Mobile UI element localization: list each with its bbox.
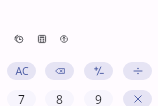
- button[interactable]: 8: [45, 90, 74, 106]
- button[interactable]: Multiply: [123, 90, 152, 106]
- button[interactable]: Calculator: [33, 30, 51, 48]
- button[interactable]: History: [10, 30, 28, 48]
- button[interactable]: AC: [7, 62, 36, 80]
- button[interactable]: Divide: [123, 62, 152, 80]
- button[interactable]: 7: [7, 90, 36, 106]
- staticText: 8: [56, 91, 63, 106]
- button[interactable]: Unit converter: [55, 30, 73, 48]
- button[interactable]: Plus minus: [84, 62, 113, 80]
- staticText: 7: [18, 91, 25, 106]
- staticText: 9: [95, 91, 102, 106]
- button[interactable]: Backspace: [45, 62, 74, 80]
- staticText: AC: [15, 64, 29, 78]
- button[interactable]: 9: [84, 90, 113, 106]
